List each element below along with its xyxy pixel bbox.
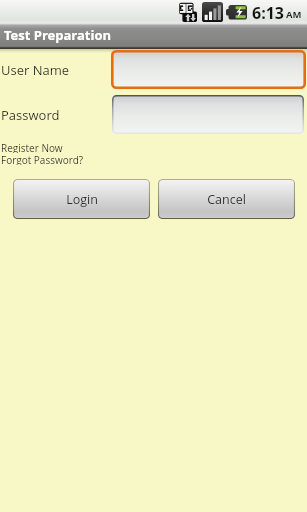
staticText: 6:13 <box>252 2 284 24</box>
staticText: User Name <box>1 61 70 79</box>
staticText: Forgot Password? <box>1 153 84 165</box>
button[interactable]: Cancel <box>158 179 295 219</box>
button[interactable]: Forgot Password? <box>1 152 87 164</box>
staticText: Login <box>66 191 98 208</box>
staticText: Cancel <box>207 191 246 208</box>
button[interactable]: Password field <box>112 95 304 134</box>
staticText: Test Preparation <box>4 26 112 44</box>
staticText: AM <box>286 8 302 21</box>
button[interactable]: Login <box>13 179 150 219</box>
staticText: Register Now <box>1 141 63 153</box>
button[interactable]: Register Now <box>1 140 67 152</box>
button[interactable]: User name field <box>111 50 306 89</box>
staticText: Password <box>1 106 60 124</box>
